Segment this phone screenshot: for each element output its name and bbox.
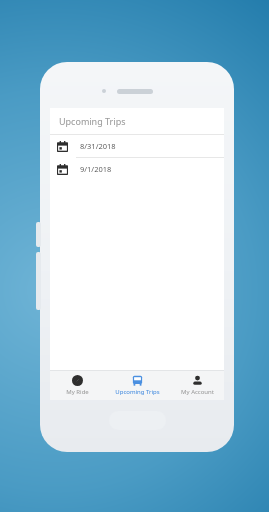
other: My Account [192, 375, 203, 386]
staticText: Upcoming Trips [59, 115, 126, 127]
button[interactable]: My Ride [50, 370, 105, 400]
button[interactable]: Upcoming Trips [105, 370, 170, 400]
staticText: 9/1/2018 [80, 164, 112, 174]
staticText: Upcoming Trips [115, 388, 160, 396]
button[interactable]: 8/31/2018 [50, 135, 224, 158]
staticText: My Account [181, 388, 214, 396]
other: My Ride [72, 375, 83, 386]
staticText: 8/31/2018 [80, 141, 116, 151]
button[interactable]: 9/1/2018 [50, 158, 224, 180]
staticText: My Ride [66, 388, 89, 396]
other: Upcoming Trips [132, 375, 143, 386]
button[interactable]: My Account [170, 370, 224, 400]
